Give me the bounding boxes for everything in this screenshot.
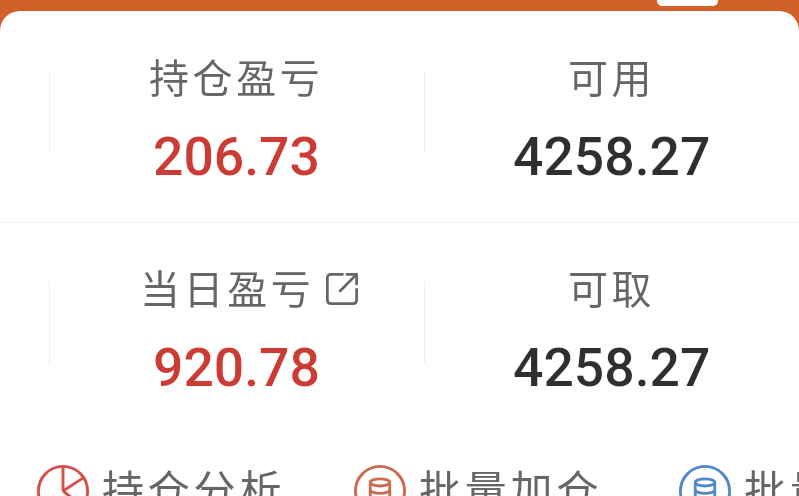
staticText: 206.73: [153, 125, 320, 188]
staticText: 批量加仓: [419, 457, 603, 496]
button[interactable]: 可用: [424, 11, 799, 222]
button[interactable]: 批量减仓: [679, 454, 799, 496]
staticText: 4258.27: [513, 336, 711, 399]
staticText: 可取: [568, 258, 656, 316]
staticText: 持仓盈亏: [149, 47, 324, 105]
button[interactable]: Open today's profit detail: [326, 273, 358, 305]
staticText: 920.78: [153, 336, 320, 399]
button[interactable]: 当日盈亏: [49, 222, 424, 433]
staticText: 当日盈亏: [140, 258, 315, 316]
button[interactable]: 可取: [424, 222, 799, 433]
button[interactable]: 批量加仓: [354, 454, 603, 496]
button[interactable]: 持仓分析: [37, 454, 286, 496]
button[interactable]: 持仓盈亏: [49, 11, 424, 222]
staticText: 4258.27: [513, 125, 711, 188]
staticText: 批量减仓: [744, 457, 799, 496]
staticText: 可用: [568, 47, 656, 105]
staticText: 持仓分析: [102, 457, 286, 496]
